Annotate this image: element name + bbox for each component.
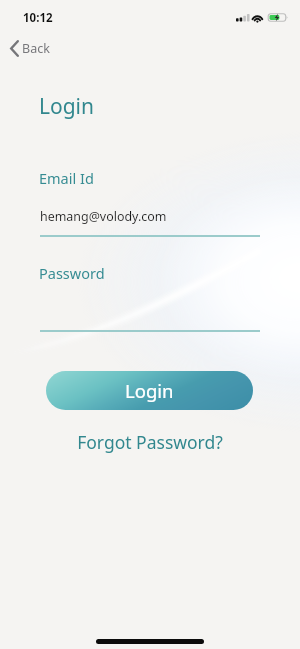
button[interactable]: Forgot Password? xyxy=(0,430,300,454)
staticText: Password xyxy=(39,263,105,283)
staticText: 10:12 xyxy=(23,10,53,26)
staticText: hemang@volody.com xyxy=(40,208,167,225)
staticText: Email Id xyxy=(39,168,94,188)
button[interactable]: Back xyxy=(5,36,58,62)
staticText: Login xyxy=(39,92,95,121)
staticText: Back xyxy=(22,40,50,57)
staticText: Login xyxy=(125,378,174,403)
button[interactable]: Login xyxy=(46,371,253,410)
